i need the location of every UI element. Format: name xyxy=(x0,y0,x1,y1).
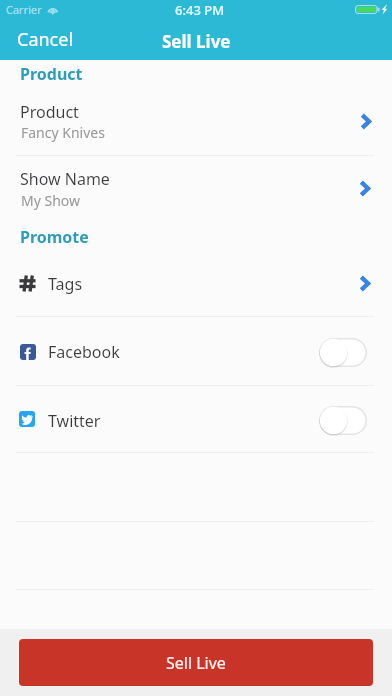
staticText: Facebook xyxy=(48,341,120,363)
staticText: 6:43 PM xyxy=(175,1,225,19)
button[interactable]: Tags xyxy=(0,251,392,316)
button[interactable]: Twitter xyxy=(0,386,392,452)
staticText: My Show xyxy=(21,191,81,210)
button[interactable]: Facebook xyxy=(0,317,392,385)
staticText: Sell Live xyxy=(162,30,231,53)
staticText: Product xyxy=(20,101,79,123)
button[interactable]: Show Name xyxy=(0,156,392,223)
staticText: Sell Live xyxy=(166,652,226,674)
other: Open tags xyxy=(359,275,371,292)
staticText: Twitter xyxy=(48,410,101,432)
staticText: Fancy Knives xyxy=(21,123,105,142)
button[interactable]: Cancel xyxy=(5,22,85,58)
staticText: Tags xyxy=(48,273,83,295)
other: Open show name xyxy=(359,180,371,197)
button[interactable]: Share to Twitter xyxy=(319,406,367,435)
button[interactable]: Product xyxy=(0,89,392,156)
button[interactable]: Share to Facebook xyxy=(319,338,367,367)
other: Open product xyxy=(360,113,372,130)
staticText: Show Name xyxy=(20,168,110,190)
staticText: Product xyxy=(20,63,83,85)
button[interactable]: Sell Live xyxy=(19,639,373,686)
staticText: Cancel xyxy=(17,27,74,52)
staticText: Promote xyxy=(20,226,89,248)
staticText: Carrier xyxy=(6,2,42,17)
